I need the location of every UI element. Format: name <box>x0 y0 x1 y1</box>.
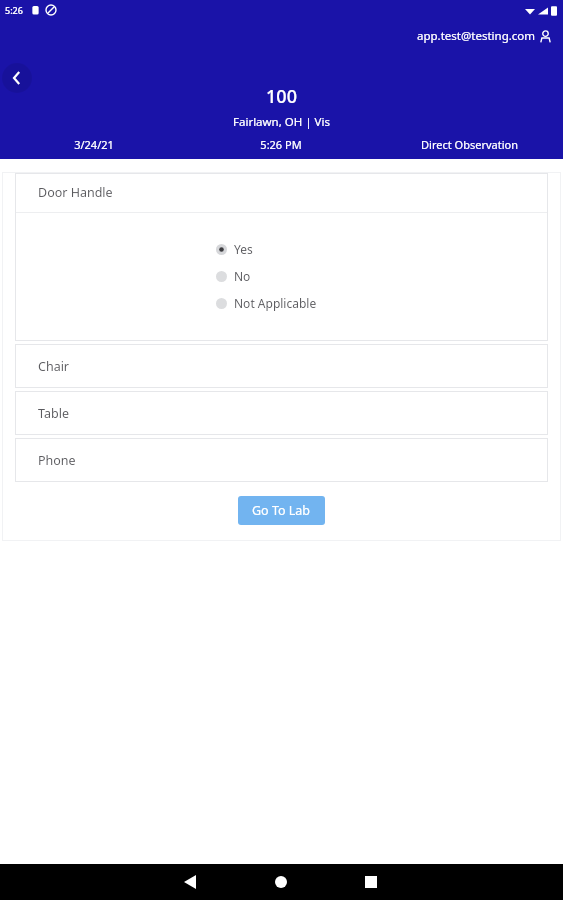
button[interactable]: Door Handle <box>15 173 548 212</box>
staticText: Chair <box>38 358 70 375</box>
staticText: Door Handle <box>38 184 113 201</box>
staticText: Phone <box>38 452 76 469</box>
button[interactable]: No <box>216 268 348 284</box>
staticText: 5:26 <box>5 4 23 16</box>
staticText: Fairlawn, OH | Vis <box>233 114 330 130</box>
staticText: Yes <box>234 241 253 257</box>
button[interactable]: Back <box>2 63 32 93</box>
staticText: Go To Lab <box>252 502 311 519</box>
staticText: Table <box>38 405 69 422</box>
button[interactable]: app.test@testing.com <box>415 26 554 46</box>
staticText: 5:26 PM <box>260 137 302 152</box>
button[interactable]: Go To Lab <box>238 496 325 525</box>
staticText: No <box>234 268 251 284</box>
button[interactable]: Not Applicable <box>216 295 348 311</box>
staticText: 3/24/21 <box>74 137 114 152</box>
staticText: app.test@testing.com <box>417 28 536 44</box>
button[interactable]: Phone <box>15 438 548 482</box>
button[interactable]: Table <box>15 391 548 435</box>
button[interactable]: Chair <box>15 344 548 388</box>
staticText: Direct Observation <box>421 137 518 152</box>
staticText: Not Applicable <box>234 295 317 311</box>
button[interactable]: Yes <box>216 241 348 257</box>
staticText: 100 <box>266 84 297 109</box>
